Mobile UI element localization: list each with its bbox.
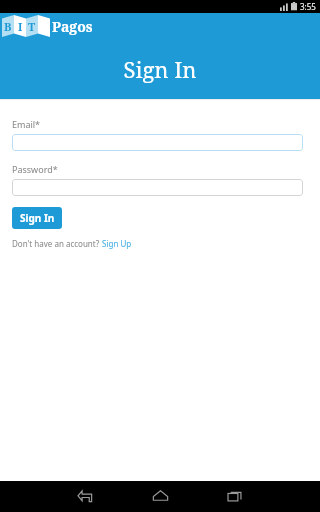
button[interactable] (12, 179, 303, 196)
button[interactable]: Recent apps (220, 481, 250, 512)
staticText: Sign In (20, 211, 55, 225)
staticText: 3:55 (300, 1, 316, 12)
staticText: B (4, 19, 12, 34)
button[interactable]: Back (70, 481, 100, 512)
staticText: Password* (12, 163, 58, 175)
staticText: T (28, 19, 36, 34)
staticText: Sign In (123, 54, 197, 84)
button[interactable] (12, 134, 303, 151)
staticText: Pagos (52, 17, 93, 36)
staticText: I (18, 19, 23, 34)
staticText: Don't have an account? (12, 238, 102, 249)
button[interactable]: Home (145, 481, 175, 512)
button[interactable]: Sign In (12, 207, 62, 229)
button[interactable]: Sign Up (102, 238, 132, 249)
staticText: Email* (12, 118, 41, 130)
staticText: Sign Up (102, 238, 132, 249)
